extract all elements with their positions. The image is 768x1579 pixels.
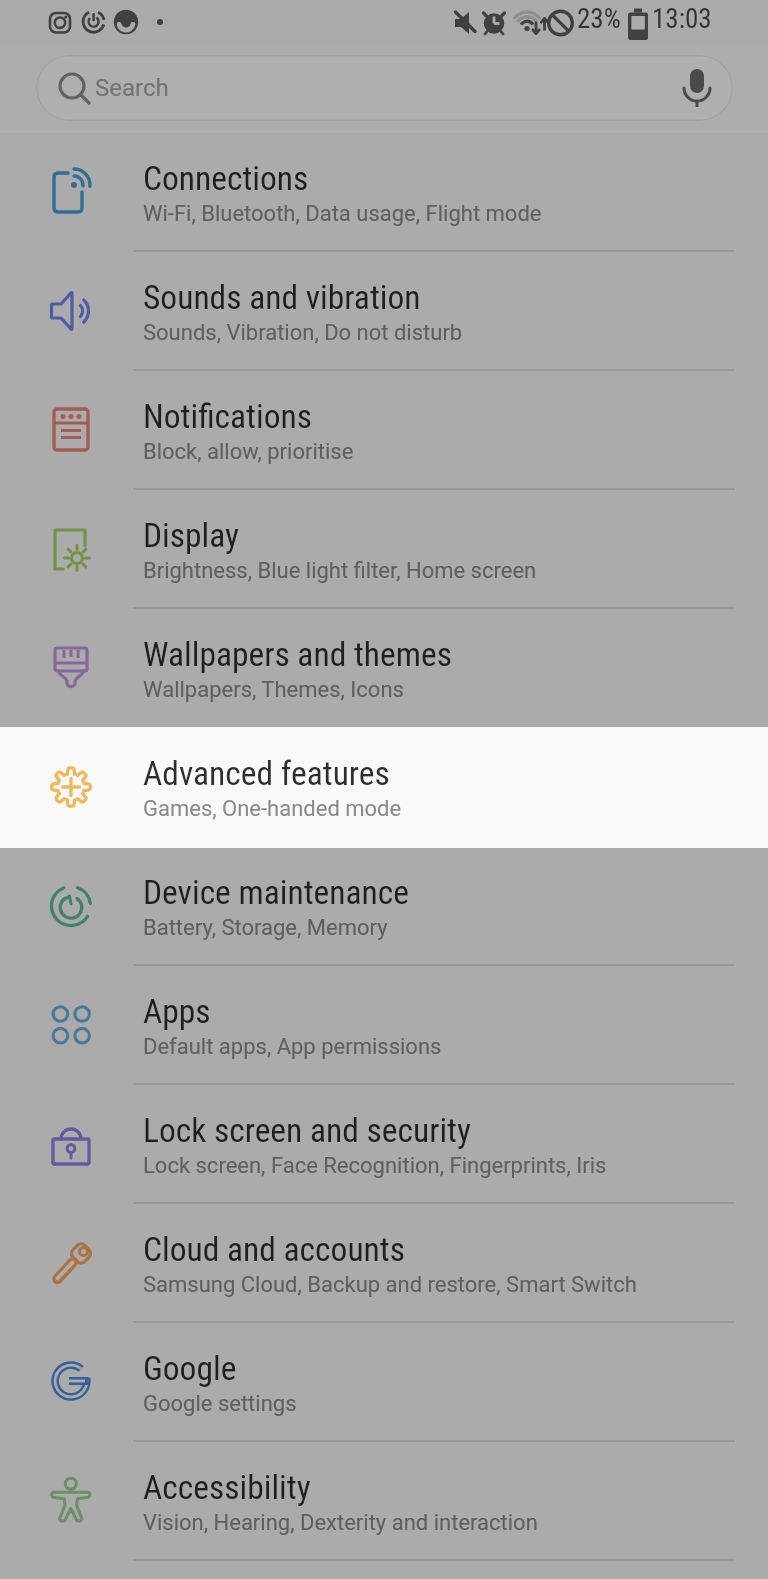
button[interactable]: Cloud and accounts: [0, 1204, 768, 1323]
staticText: Notifications: [143, 397, 313, 436]
staticText: Google: [143, 1349, 237, 1388]
button[interactable]: Advanced features: [0, 728, 768, 847]
button[interactable]: Apps: [0, 966, 768, 1085]
staticText: Wi-Fi, Bluetooth, Data usage, Flight mod…: [143, 201, 542, 227]
button[interactable]: Sounds and vibration: [0, 252, 768, 371]
staticText: 13:03: [652, 3, 712, 35]
button[interactable]: Notifications: [0, 371, 768, 490]
staticText: Sounds, Vibration, Do not disturb: [143, 320, 463, 346]
staticText: Search: [95, 74, 169, 102]
button[interactable]: Lock screen and security: [0, 1085, 768, 1204]
staticText: Lock screen, Face Recognition, Fingerpri…: [143, 1153, 607, 1179]
staticText: Default apps, App permissions: [143, 1034, 442, 1060]
staticText: Advanced features: [143, 754, 390, 793]
button[interactable]: Connections: [0, 133, 768, 252]
staticText: Block, allow, prioritise: [143, 439, 354, 465]
staticText: Lock screen and security: [143, 1111, 471, 1150]
staticText: Wallpapers and themes: [143, 635, 452, 674]
button[interactable]: Accessibility: [0, 1442, 768, 1561]
staticText: Display: [143, 516, 240, 555]
staticText: Samsung Cloud, Backup and restore, Smart…: [143, 1272, 637, 1298]
staticText: Google settings: [143, 1391, 297, 1417]
staticText: Wallpapers, Themes, Icons: [143, 677, 404, 703]
staticText: Sounds and vibration: [143, 278, 421, 317]
button[interactable]: Search: [36, 55, 733, 121]
staticText: Cloud and accounts: [143, 1230, 405, 1269]
staticText: Brightness, Blue light filter, Home scre…: [143, 558, 537, 584]
button[interactable]: Display: [0, 490, 768, 609]
button[interactable]: Google: [0, 1323, 768, 1442]
staticText: Games, One-handed mode: [143, 796, 402, 822]
staticText: 23%: [577, 3, 621, 35]
button[interactable]: Wallpapers and themes: [0, 609, 768, 728]
staticText: Connections: [143, 159, 309, 198]
button[interactable]: Device maintenance: [0, 847, 768, 966]
staticText: Device maintenance: [143, 873, 409, 912]
staticText: Apps: [143, 992, 211, 1031]
staticText: Battery, Storage, Memory: [143, 915, 388, 941]
staticText: Vision, Hearing, Dexterity and interacti…: [143, 1510, 538, 1536]
staticText: Accessibility: [143, 1468, 311, 1507]
